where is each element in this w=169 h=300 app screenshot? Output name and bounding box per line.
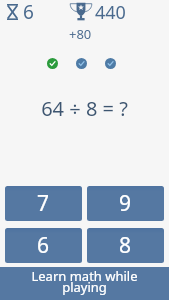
staticText: +80 <box>69 25 92 43</box>
staticText: 6 <box>37 231 50 260</box>
staticText: 6 <box>23 0 34 25</box>
staticText: 8 <box>119 231 132 260</box>
button[interactable]: 9 <box>87 186 164 221</box>
staticText: 440 <box>95 0 126 25</box>
staticText: 7 <box>37 189 50 218</box>
button[interactable]: 6 <box>5 228 82 263</box>
button[interactable]: 8 <box>87 228 164 263</box>
staticText: 64 ÷ 8 = ? <box>0 95 169 122</box>
button[interactable]: 7 <box>5 186 82 221</box>
button[interactable]: Learn math while playing <box>0 267 169 300</box>
staticText: Learn math while playing <box>31 267 138 296</box>
staticText: 9 <box>119 189 132 218</box>
